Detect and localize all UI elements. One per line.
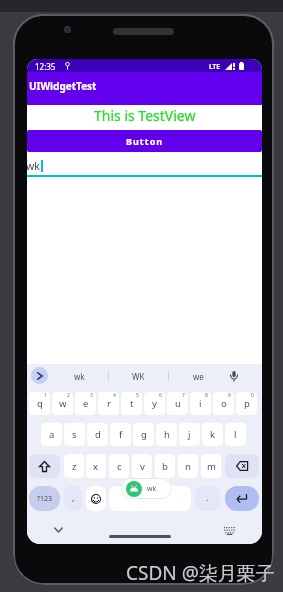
- staticText: y: [152, 397, 157, 410]
- staticText: Button: [126, 135, 164, 147]
- staticText: b: [162, 460, 168, 473]
- staticText: 12:35: [35, 61, 56, 72]
- button[interactable]: r: [98, 392, 119, 415]
- staticText: 2: [67, 392, 70, 399]
- button[interactable]: [225, 454, 259, 478]
- staticText: q: [37, 397, 43, 410]
- button[interactable]: s: [64, 423, 85, 446]
- staticText: 5: [136, 392, 139, 399]
- button[interactable]: [86, 486, 106, 511]
- staticText: k: [210, 428, 216, 441]
- button[interactable]: l: [225, 423, 246, 446]
- button[interactable]: [54, 527, 63, 533]
- staticText: 9: [228, 392, 231, 399]
- button[interactable]: w: [52, 392, 73, 415]
- staticText: 7: [182, 392, 185, 399]
- button[interactable]: ?123: [29, 486, 60, 511]
- button[interactable]: d: [87, 423, 108, 446]
- staticText: x: [93, 460, 99, 473]
- staticText: u: [175, 397, 181, 410]
- staticText: i: [199, 397, 202, 410]
- button[interactable]: z: [64, 454, 84, 478]
- button[interactable]: u: [167, 392, 188, 415]
- staticText: f: [119, 428, 123, 441]
- staticText: w: [59, 397, 67, 410]
- staticText: .: [206, 491, 209, 503]
- staticText: 4: [113, 392, 116, 399]
- button[interactable]: g: [133, 423, 154, 446]
- button[interactable]: o: [213, 392, 234, 415]
- button[interactable]: m: [201, 454, 221, 478]
- staticText: p: [244, 397, 250, 410]
- button[interactable]: [230, 371, 238, 383]
- button[interactable]: e: [75, 392, 96, 415]
- staticText: wk: [27, 159, 40, 173]
- button[interactable]: [225, 486, 259, 511]
- staticText: o: [221, 397, 227, 410]
- button[interactable]: v: [132, 454, 152, 478]
- button[interactable]: p: [236, 392, 257, 415]
- staticText: z: [72, 460, 77, 473]
- staticText: g: [141, 428, 147, 441]
- button[interactable]: k: [202, 423, 223, 446]
- button[interactable]: h: [156, 423, 177, 446]
- staticText: CSDN @柒月栗子: [126, 560, 275, 586]
- button[interactable]: WK: [108, 364, 168, 388]
- button[interactable]: y: [144, 392, 165, 415]
- staticText: UIWidgetTest: [29, 79, 97, 93]
- staticText: c: [117, 460, 122, 473]
- staticText: wk: [147, 484, 157, 494]
- staticText: we: [193, 371, 204, 382]
- staticText: h: [164, 428, 170, 441]
- staticText: ,: [72, 491, 75, 503]
- button[interactable]: .: [195, 486, 220, 511]
- staticText: a: [49, 428, 55, 441]
- button[interactable]: n: [178, 454, 198, 478]
- button[interactable]: x: [86, 454, 106, 478]
- staticText: j: [188, 428, 191, 441]
- button[interactable]: c: [109, 454, 129, 478]
- button[interactable]: [109, 486, 191, 511]
- staticText: m: [207, 460, 216, 473]
- button[interactable]: q: [29, 392, 50, 415]
- staticText: 8: [205, 392, 208, 399]
- button[interactable]: [224, 527, 235, 535]
- staticText: e: [83, 397, 89, 410]
- button[interactable]: Button: [27, 130, 262, 152]
- button[interactable]: a: [41, 423, 62, 446]
- button[interactable]: b: [155, 454, 175, 478]
- staticText: wk: [74, 371, 85, 382]
- staticText: 3: [90, 392, 93, 399]
- button[interactable]: ,: [64, 486, 82, 511]
- button[interactable]: [31, 367, 48, 384]
- staticText: d: [95, 428, 101, 441]
- button[interactable]: t: [121, 392, 142, 415]
- staticText: WK: [132, 371, 145, 382]
- staticText: ?123: [37, 494, 53, 504]
- staticText: This is TestView: [94, 106, 196, 125]
- staticText: v: [140, 460, 145, 473]
- button[interactable]: i: [190, 392, 211, 415]
- staticText: t: [130, 397, 134, 410]
- button[interactable]: j: [179, 423, 200, 446]
- staticText: l: [234, 428, 237, 441]
- staticText: s: [72, 428, 77, 441]
- button[interactable]: wk: [50, 364, 108, 388]
- staticText: 1: [44, 392, 47, 399]
- button[interactable]: we: [168, 364, 228, 388]
- button[interactable]: f: [110, 423, 131, 446]
- staticText: 0: [251, 392, 254, 399]
- staticText: 6: [159, 392, 162, 399]
- staticText: n: [185, 460, 191, 473]
- button[interactable]: [29, 454, 60, 478]
- staticText: LTE: [209, 62, 220, 71]
- staticText: r: [107, 397, 111, 410]
